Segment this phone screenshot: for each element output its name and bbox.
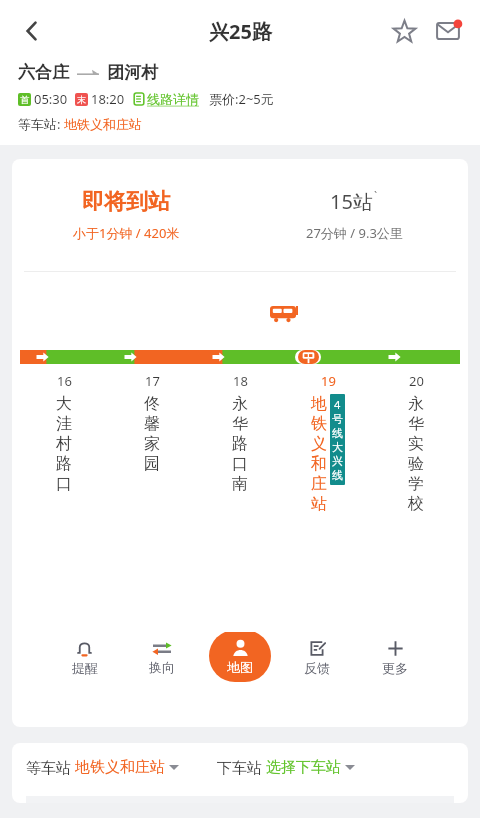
staticText: 佟 xyxy=(144,394,160,414)
staticText: 票价:2~5元 xyxy=(209,90,274,108)
staticText: 线 xyxy=(332,468,343,482)
button[interactable]: 线路详情 xyxy=(133,91,199,107)
staticText: 家 xyxy=(144,434,160,454)
staticText: 下车站 xyxy=(217,757,266,777)
staticText: 首 xyxy=(20,94,29,105)
staticText: 地图 xyxy=(227,659,253,675)
staticText: 05:30 xyxy=(34,90,68,108)
staticText: 20 xyxy=(409,372,424,390)
staticText: 大 xyxy=(332,440,343,454)
staticText: 庄 xyxy=(311,474,327,494)
staticText: 园 xyxy=(144,454,160,474)
staticText: 反馈 xyxy=(304,660,330,676)
staticText: 学 xyxy=(408,474,424,494)
staticText: 15站 xyxy=(330,188,373,215)
button[interactable]: Favorite xyxy=(382,9,426,53)
staticText: 验 xyxy=(408,454,424,474)
staticText: 站 xyxy=(311,494,327,514)
staticText: 换向 xyxy=(149,659,175,675)
button[interactable]: 20 xyxy=(372,372,460,514)
staticText: 线路详情 xyxy=(147,91,199,107)
button[interactable]: 下车站 xyxy=(217,757,355,777)
staticText: 村 xyxy=(56,434,72,454)
staticText: 18:20 xyxy=(91,90,125,108)
staticText: 校 xyxy=(408,494,424,514)
staticText: 号 xyxy=(332,412,343,426)
staticText: 洼 xyxy=(56,414,72,434)
staticText: 27分钟 / 9.3公里 xyxy=(306,224,403,242)
staticText: 永 xyxy=(232,394,248,414)
staticText: 地铁义和庄站 xyxy=(64,116,142,132)
staticText: 16 xyxy=(57,372,72,390)
staticText: ` xyxy=(374,188,378,203)
button[interactable]: 19 xyxy=(284,372,372,514)
staticText: 更多 xyxy=(382,660,408,676)
button[interactable]: Back xyxy=(8,7,56,55)
staticText: 南 xyxy=(232,474,248,494)
staticText: 华 xyxy=(408,414,424,434)
button[interactable]: Messages xyxy=(426,9,470,53)
staticText: 4 xyxy=(334,397,341,412)
button[interactable]: 16 xyxy=(20,372,108,494)
staticText: 路 xyxy=(56,454,72,474)
button[interactable]: 反馈 xyxy=(278,632,356,684)
staticText: 等车站 xyxy=(26,757,75,777)
staticText: 大 xyxy=(56,394,72,414)
staticText: 19 xyxy=(321,372,336,390)
button[interactable]: 更多 xyxy=(356,632,434,684)
staticText: 华 xyxy=(232,414,248,434)
staticText: 口 xyxy=(232,454,248,474)
button[interactable]: 18 xyxy=(196,372,284,494)
staticText: 铁 xyxy=(311,414,327,434)
staticText: 口 xyxy=(56,474,72,494)
staticText: 即将到站 xyxy=(82,188,170,216)
staticText: 18 xyxy=(233,372,248,390)
staticText: 和 xyxy=(311,454,327,474)
staticText: 地铁义和庄站 xyxy=(75,758,165,777)
staticText: 线 xyxy=(332,426,343,440)
staticText: 团河村 xyxy=(107,62,158,83)
button[interactable]: 等车站 xyxy=(26,757,179,777)
staticText: 地 xyxy=(311,394,327,414)
staticText: 小于1分钟 / 420米 xyxy=(73,224,180,242)
staticText: 义 xyxy=(311,434,327,454)
staticText: 末 xyxy=(77,94,86,105)
staticText: 路 xyxy=(232,434,248,454)
staticText: 馨 xyxy=(144,414,160,434)
staticText: 选择下车站 xyxy=(266,758,341,777)
staticText: 实 xyxy=(408,434,424,454)
button[interactable]: 换向 xyxy=(123,632,200,684)
button[interactable]: 地图 xyxy=(209,632,271,682)
staticText: 17 xyxy=(145,372,160,390)
button[interactable]: 提醒 xyxy=(46,632,123,684)
staticText: 兴25路 xyxy=(209,18,272,45)
staticText: 永 xyxy=(408,394,424,414)
button[interactable]: 17 xyxy=(108,372,196,474)
staticText: 六合庄 xyxy=(18,62,69,83)
staticText: 提醒 xyxy=(72,660,98,676)
staticText: 等车站: xyxy=(18,115,64,133)
staticText: 兴 xyxy=(332,454,343,468)
